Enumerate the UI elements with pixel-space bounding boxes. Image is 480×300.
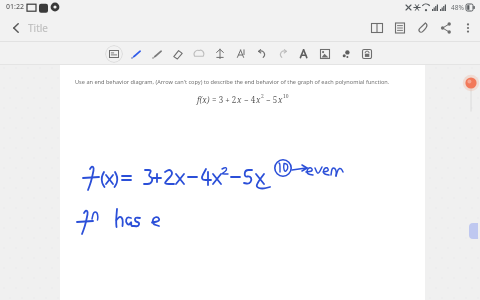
staticText: 48% (451, 3, 464, 12)
staticText: x (256, 94, 261, 105)
button[interactable]: Insert image (317, 46, 333, 62)
button[interactable]: Colour (338, 46, 354, 62)
staticText: x (237, 94, 242, 105)
staticText: = 3 + 2 (210, 94, 237, 105)
button[interactable]: Shapes (212, 46, 228, 62)
staticText: Use an end behavior diagram, (Arrow can'… (75, 78, 390, 86)
button[interactable]: Contents (390, 18, 410, 38)
button[interactable]: Share (436, 18, 456, 38)
button[interactable]: Quick panel (469, 223, 478, 239)
button[interactable]: Text tool (105, 45, 123, 63)
staticText: 01:22 (6, 2, 24, 12)
staticText: x (278, 94, 283, 105)
button[interactable]: Undo (254, 46, 270, 62)
button[interactable]: Text style (296, 46, 312, 62)
staticText: 2 (261, 93, 264, 100)
button[interactable]: Back (4, 17, 26, 39)
button[interactable]: Redo (275, 46, 291, 62)
button[interactable]: Eraser (170, 46, 186, 62)
staticText: − 4 (242, 94, 256, 105)
staticText: Title (28, 21, 48, 35)
button[interactable]: Insert text (233, 46, 249, 62)
button[interactable]: Attach (413, 18, 433, 38)
button[interactable]: More options (459, 19, 477, 37)
staticText: 10 (283, 93, 289, 100)
button[interactable]: Page view (367, 18, 387, 38)
staticText: f(x) (197, 94, 210, 105)
button[interactable]: Lasso select (191, 46, 207, 62)
button[interactable]: Pencil (149, 46, 165, 62)
staticText: − 5 (264, 94, 278, 105)
button[interactable]: Lock (359, 46, 375, 62)
button[interactable]: Pen (128, 46, 144, 62)
